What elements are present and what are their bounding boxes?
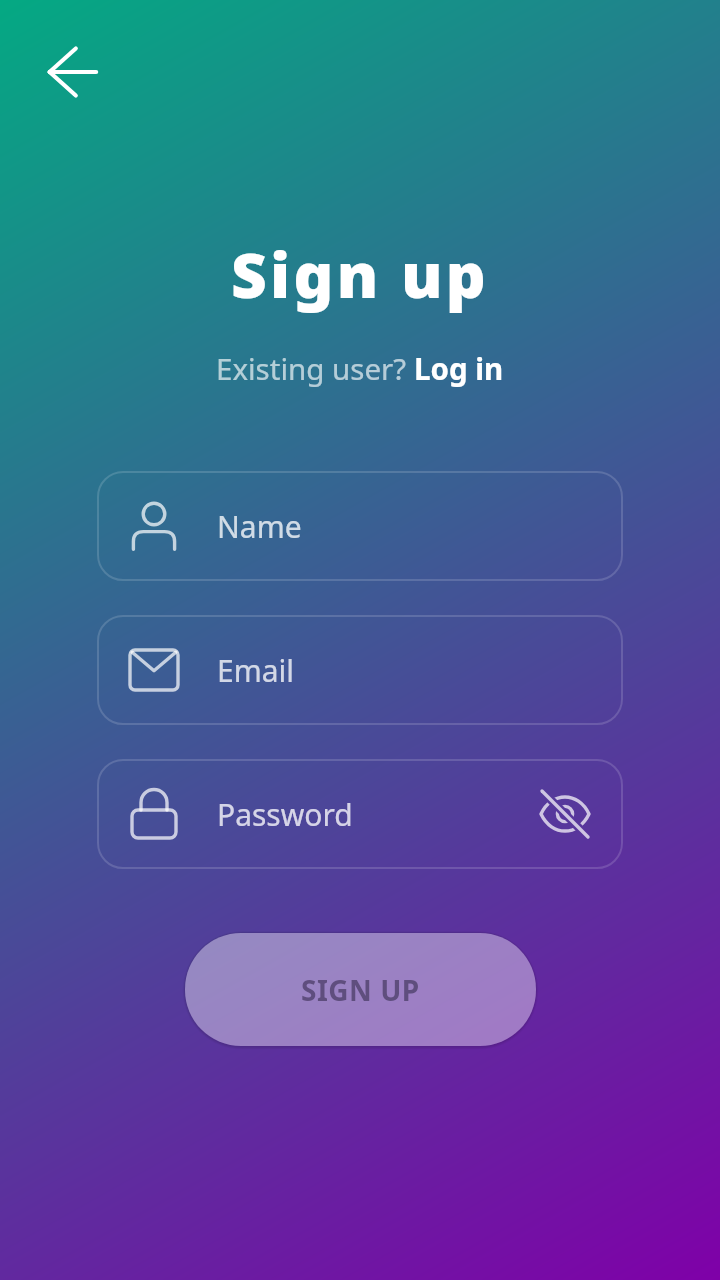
staticText: Password	[217, 794, 353, 835]
button[interactable]: Show password	[527, 776, 603, 852]
button[interactable]: Email	[97, 615, 623, 725]
button[interactable]: Name	[97, 471, 623, 581]
button[interactable]: SIGN UP	[185, 933, 536, 1046]
staticText: Email	[217, 650, 295, 691]
staticText: Name	[217, 506, 302, 547]
staticText: Log in	[414, 348, 504, 388]
staticText: Sign up	[231, 232, 489, 316]
button[interactable]: Password	[97, 759, 623, 869]
button[interactable]: Log in	[414, 348, 504, 388]
staticText: SIGN UP	[301, 971, 420, 1009]
button[interactable]: Back	[24, 24, 119, 119]
staticText: Existing user?	[216, 348, 414, 388]
